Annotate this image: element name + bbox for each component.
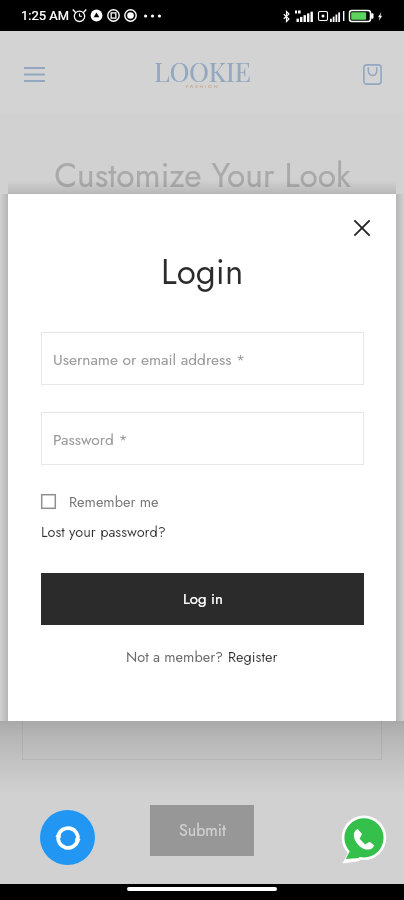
staticText: LOOKIE — [154, 53, 251, 89]
button[interactable]: Username or email address * — [41, 332, 364, 385]
button[interactable]: Submit — [150, 805, 254, 856]
button[interactable]: Lost your password? — [41, 521, 166, 542]
staticText: Password * — [53, 428, 128, 450]
button[interactable]: WhatsApp — [338, 815, 387, 864]
button[interactable]: Refresh — [40, 810, 95, 865]
staticText: Customize Your Look — [54, 151, 351, 199]
button[interactable]: Menu — [14, 54, 54, 94]
staticText: Username or email address * — [53, 348, 246, 370]
button[interactable]: Close — [347, 213, 377, 243]
button[interactable]: Remember me — [41, 489, 159, 513]
staticText: Not a member? — [126, 646, 228, 667]
staticText: Submit — [179, 819, 226, 842]
button[interactable]: Log in — [41, 573, 364, 625]
staticText: Log in — [183, 588, 223, 610]
staticText: 1:25 AM — [21, 8, 70, 23]
button[interactable]: Register — [228, 646, 278, 667]
button[interactable]: Shopping bag — [352, 54, 392, 94]
button[interactable]: Password * — [41, 412, 364, 465]
staticText: Login — [161, 247, 244, 298]
staticText: FASHION — [186, 83, 220, 90]
staticText: Remember me — [69, 491, 159, 512]
